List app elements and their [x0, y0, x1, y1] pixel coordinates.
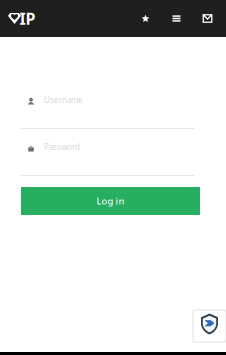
- staticText: Password: [44, 142, 80, 152]
- button[interactable]: Favorites: [130, 0, 161, 37]
- staticText: Username: [44, 95, 83, 105]
- staticText: Log in: [96, 195, 124, 207]
- button[interactable]: Messages: [192, 0, 223, 37]
- button[interactable]: Password: [0, 136, 226, 176]
- button[interactable]: Security verified: [193, 310, 226, 342]
- button[interactable]: Log in: [0, 187, 226, 215]
- staticText: IP: [19, 8, 35, 29]
- button[interactable]: Username: [0, 89, 226, 129]
- button[interactable]: Menu: [161, 0, 192, 37]
